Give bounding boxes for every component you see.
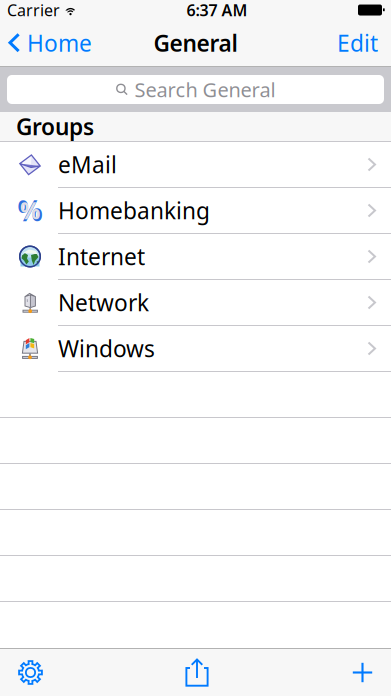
button[interactable]: %: [0, 188, 391, 234]
button[interactable]: Settings: [1, 649, 60, 696]
staticText: eMail: [58, 149, 117, 179]
button[interactable]: Share: [169, 649, 225, 696]
button[interactable]: Add: [334, 649, 391, 696]
button[interactable]: Edit: [337, 21, 391, 65]
button[interactable]: Network: [0, 280, 391, 326]
staticText: Windows: [58, 333, 155, 363]
staticText: Groups: [16, 111, 94, 141]
staticText: General: [153, 28, 237, 58]
staticText: Internet: [58, 241, 145, 271]
staticText: Search General: [134, 76, 275, 103]
staticText: Home: [27, 28, 92, 58]
staticText: Homebanking: [58, 195, 210, 225]
staticText: %: [17, 192, 42, 229]
staticText: Network: [58, 287, 149, 317]
button[interactable]: Windows: [0, 326, 391, 372]
button[interactable]: Internet: [0, 234, 391, 280]
button[interactable]: Home: [0, 21, 92, 65]
staticText: 6:37 AM: [186, 0, 247, 21]
button[interactable]: eMail: [0, 142, 391, 188]
staticText: %: [20, 195, 40, 225]
staticText: Edit: [337, 28, 378, 58]
staticText: Carrier: [7, 0, 60, 21]
